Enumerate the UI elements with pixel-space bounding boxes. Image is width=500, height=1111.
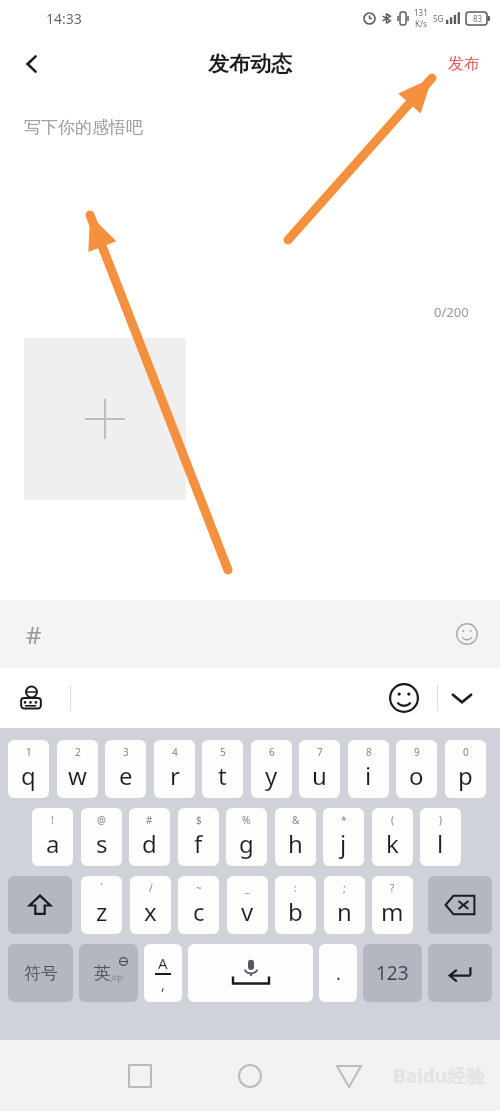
staticText: 1 [26,745,32,759]
button[interactable]: 9 [396,740,437,798]
staticText: u [312,759,327,792]
button[interactable]: Home [226,1052,274,1100]
staticText: 2 [75,745,81,759]
staticText: % [242,813,251,827]
button[interactable]: Back [10,42,54,86]
button[interactable]: ? [372,876,413,934]
staticText: j [340,827,347,860]
staticText: K/s [415,18,427,29]
staticText: x [144,895,157,928]
staticText: 符号 [24,963,58,984]
button[interactable]: Back [325,1052,373,1100]
staticText: r [170,759,180,792]
button[interactable]: ` [81,876,122,934]
staticText: b [288,895,303,928]
staticText: # [146,813,153,827]
button[interactable]: Backspace [428,876,492,934]
staticText: 写下你的感悟吧 [24,117,143,138]
staticText: & [292,813,300,827]
staticText: A [158,953,168,973]
button[interactable]: Enter [428,944,492,1002]
button[interactable]: 3 [105,740,146,798]
button[interactable]: % [226,808,267,866]
staticText: 6 [269,745,275,759]
staticText: 83 [473,13,483,24]
staticText: /中 [111,972,124,984]
staticText: $ [196,813,202,827]
button[interactable]: $ [178,808,219,866]
staticText: f [194,827,203,860]
button[interactable]: Period [319,944,357,1002]
staticText: 英 [94,963,111,984]
button[interactable]: Recents [116,1052,164,1100]
staticText: ? [390,881,395,895]
staticText: 9 [414,745,420,759]
staticText: w [68,759,87,792]
button[interactable]: * [323,808,364,866]
staticText: 123 [376,960,409,986]
staticText: m [381,895,404,928]
button[interactable]: ~ [178,876,219,934]
button[interactable]: 8 [348,740,389,798]
button[interactable]: ( [372,808,413,866]
button[interactable]: # [129,808,170,866]
staticText: g [239,827,254,860]
button[interactable]: 4 [154,740,195,798]
staticText: Baidu经验 [393,1063,486,1089]
button[interactable]: ) [420,808,461,866]
staticText: 5 [220,745,226,759]
staticText: d [142,827,157,860]
button[interactable]: ! [32,808,73,866]
staticText: a [46,827,60,860]
staticText: 5G [433,13,444,24]
button[interactable]: ; [324,876,365,934]
button[interactable]: 符号 [8,944,73,1002]
staticText: 8 [366,745,372,759]
staticText: p [458,759,473,792]
staticText: k [386,827,399,860]
button[interactable]: Emoji keyboard [382,676,426,720]
button[interactable]: Add photo [24,338,186,500]
staticText: 3 [123,745,129,759]
staticText: z [96,895,108,928]
staticText: ) [439,813,442,827]
button[interactable]: Space [188,944,313,1002]
staticText: : [294,881,297,895]
staticText: . [336,961,341,986]
button[interactable]: 发布 [442,48,486,80]
button[interactable]: _ [227,876,268,934]
button[interactable]: & [275,808,316,866]
button[interactable]: 0 [445,740,486,798]
staticText: e [119,759,133,792]
staticText: ! [51,813,54,827]
staticText: _ [245,881,250,895]
staticText: ~ [196,881,202,895]
staticText: , [161,975,165,994]
button[interactable]: / [130,876,171,934]
staticText: 131 [414,7,428,18]
button[interactable]: : [275,876,316,934]
button[interactable]: Shift [8,876,72,934]
button[interactable]: Emoji [446,613,488,655]
button[interactable]: Topic [12,612,56,656]
button[interactable]: 123 [363,944,422,1002]
staticText: # [26,618,42,651]
button[interactable]: 5 [202,740,243,798]
staticText: 14:33 [46,9,82,28]
staticText: y [265,759,278,792]
button[interactable]: 中英文切换 [79,944,138,1002]
staticText: q [21,759,36,792]
staticText: * [341,813,347,827]
button[interactable]: A, [144,944,182,1002]
button[interactable]: 6 [251,740,292,798]
staticText: n [337,895,352,928]
staticText: / [149,881,153,895]
button[interactable]: 2 [57,740,98,798]
staticText: h [288,827,303,860]
button[interactable]: Switch input method [8,675,54,721]
button[interactable]: @ [81,808,122,866]
button[interactable]: Hide keyboard [440,676,484,720]
button[interactable]: 7 [299,740,340,798]
staticText: 7 [317,745,323,759]
button[interactable]: 1 [8,740,49,798]
